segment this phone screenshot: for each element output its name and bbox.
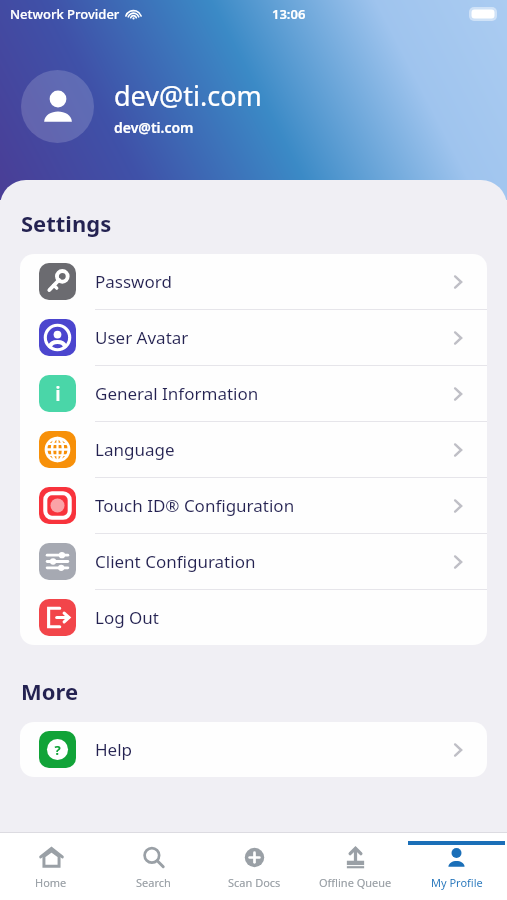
staticText: Password xyxy=(95,270,172,293)
button[interactable]: Offline Queue xyxy=(305,833,406,900)
button[interactable]: ? xyxy=(20,722,487,777)
staticText: Log Out xyxy=(95,606,159,629)
staticText: dev@ti.com xyxy=(114,118,194,137)
staticText: ? xyxy=(54,741,61,759)
button[interactable]: Profile picture xyxy=(21,70,94,143)
button[interactable]: Scan Docs xyxy=(204,833,305,900)
staticText: Search xyxy=(136,875,171,890)
staticText: Settings xyxy=(21,208,112,238)
staticText: General Information xyxy=(95,382,259,405)
button[interactable]: Client Configuration xyxy=(20,534,487,590)
staticText: dev@ti.com xyxy=(114,77,262,114)
staticText: My Profile xyxy=(431,875,483,890)
button[interactable]: User Avatar xyxy=(20,310,487,366)
button[interactable]: My Profile xyxy=(406,833,507,900)
button[interactable]: Touch ID® Configuration xyxy=(20,478,487,534)
button[interactable]: Password xyxy=(20,254,487,310)
button[interactable]: Language xyxy=(20,422,487,478)
button[interactable]: i xyxy=(20,366,487,422)
staticText: 13:06 xyxy=(272,5,306,23)
staticText: i xyxy=(55,381,61,407)
staticText: Scan Docs xyxy=(228,875,281,890)
staticText: Network Provider xyxy=(10,5,120,23)
button[interactable]: Log Out xyxy=(20,590,487,645)
staticText: More xyxy=(21,676,79,706)
staticText: User Avatar xyxy=(95,326,189,349)
button[interactable]: Home xyxy=(0,833,102,900)
staticText: Language xyxy=(95,438,175,461)
staticText: Offline Queue xyxy=(319,875,392,890)
staticText: Help xyxy=(95,738,133,761)
staticText: Client Configuration xyxy=(95,550,256,573)
staticText: Home xyxy=(35,875,67,890)
staticText: Touch ID® Configuration xyxy=(95,494,295,517)
button[interactable]: Search xyxy=(102,833,204,900)
